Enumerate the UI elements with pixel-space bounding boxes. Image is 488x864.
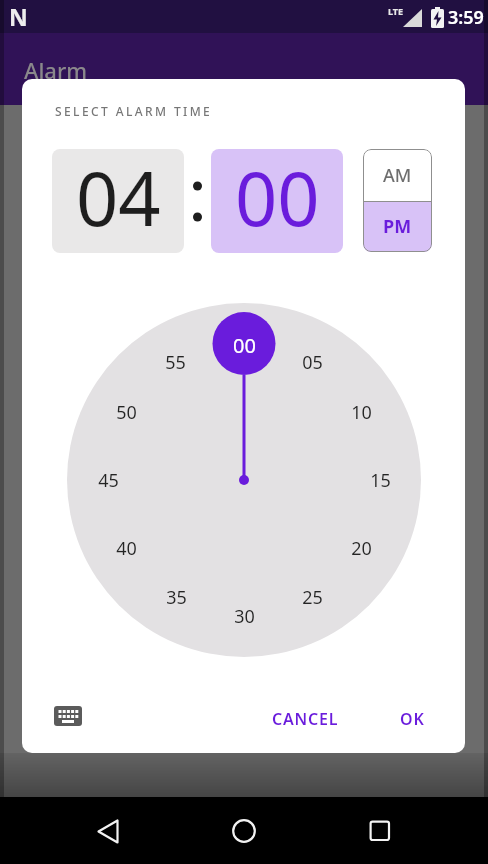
- staticText: 00: [233, 332, 256, 356]
- staticText: PM: [383, 214, 412, 239]
- button[interactable]: 00: [211, 149, 343, 253]
- button[interactable]: AM: [363, 149, 432, 201]
- staticText: AM: [383, 163, 412, 188]
- staticText: 05: [302, 350, 323, 374]
- staticText: 40: [116, 536, 137, 560]
- staticText: LTE: [388, 5, 404, 17]
- staticText: 20: [351, 536, 372, 560]
- staticText: 35: [166, 585, 187, 609]
- staticText: 25: [302, 585, 323, 609]
- staticText: OK: [400, 708, 425, 730]
- staticText: 30: [234, 604, 255, 628]
- staticText: Alarm: [24, 55, 88, 85]
- staticText: 15: [370, 468, 391, 492]
- staticText: 00: [235, 149, 320, 248]
- staticText: CANCEL: [272, 708, 339, 730]
- staticText: 04: [76, 149, 161, 248]
- button[interactable]: OK: [384, 701, 440, 737]
- button[interactable]: [84, 807, 132, 855]
- staticText: 55: [165, 350, 186, 374]
- button[interactable]: [43, 691, 93, 741]
- button[interactable]: CANCEL: [258, 701, 352, 737]
- staticText: 10: [351, 400, 372, 424]
- button[interactable]: [220, 807, 268, 855]
- button[interactable]: 04: [52, 149, 184, 253]
- staticText: 50: [116, 400, 137, 424]
- button[interactable]: PM: [363, 201, 432, 252]
- staticText: N: [9, 1, 28, 32]
- staticText: 45: [98, 468, 119, 492]
- button[interactable]: [356, 807, 404, 855]
- staticText: 3:59: [448, 5, 484, 30]
- staticText: SELECT ALARM TIME: [55, 103, 213, 119]
